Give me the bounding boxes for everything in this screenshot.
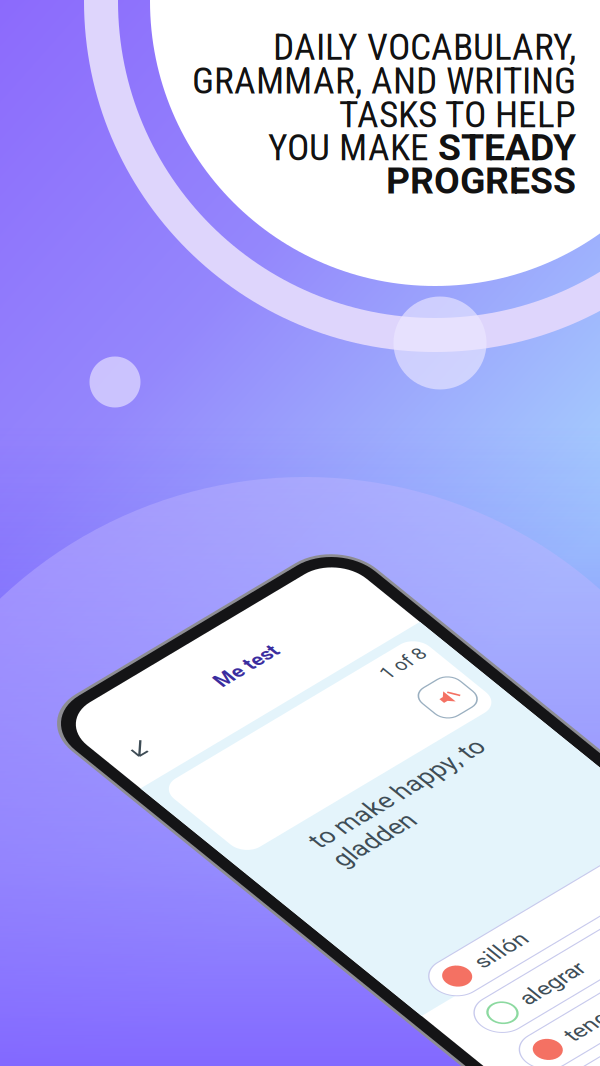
staticText: TASKS TO HELP <box>339 92 576 136</box>
staticText: PROGRESS <box>386 159 576 203</box>
staticText: GRAMMAR, AND WRITING <box>192 59 576 102</box>
staticText: to make happy, to gladden <box>22 0 218 45</box>
staticText: DAILY VOCABULARY, <box>273 25 576 69</box>
staticText: tengo <box>48 10 106 36</box>
staticText: alegrar <box>48 10 118 36</box>
staticText: sillón <box>48 10 104 36</box>
staticText: casa <box>48 10 96 36</box>
staticText: YOU MAKE STEADY <box>268 126 576 169</box>
